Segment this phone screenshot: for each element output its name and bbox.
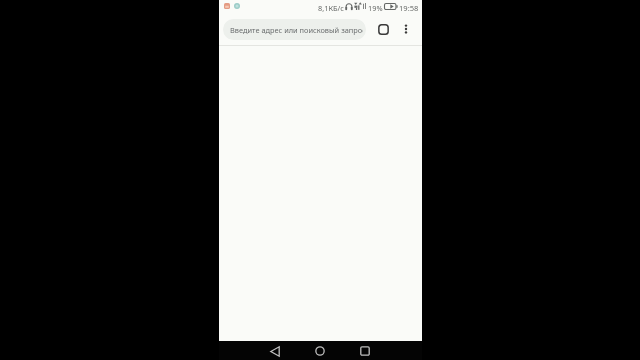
staticText: Введите адрес или поисковый запрос bbox=[230, 25, 363, 35]
button[interactable]: Введите адрес или поисковый запрос bbox=[223, 19, 366, 40]
button[interactable]: More options bbox=[396, 19, 416, 39]
button[interactable]: Recents bbox=[355, 341, 375, 360]
staticText: 8,1КБ/c bbox=[318, 3, 344, 13]
staticText: 19% bbox=[368, 3, 383, 13]
staticText: 19:58 bbox=[399, 3, 419, 13]
button[interactable]: Back bbox=[265, 341, 285, 360]
button[interactable]: Tabs bbox=[373, 19, 393, 39]
button[interactable]: Home bbox=[310, 341, 330, 360]
